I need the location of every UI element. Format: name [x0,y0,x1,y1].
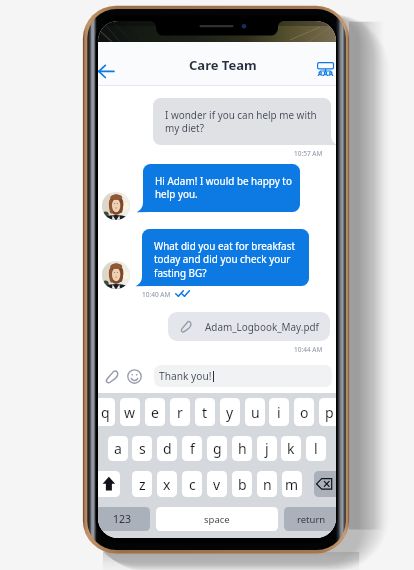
staticText: y [226,403,234,422]
button[interactable]: Back [98,58,120,84]
staticText: 123 [113,512,132,526]
button[interactable]: w [120,398,140,426]
button[interactable]: q [98,398,115,426]
button[interactable]: a [108,436,128,461]
button[interactable]: p [319,398,336,426]
staticText: space [204,513,230,526]
staticText: w [124,403,136,422]
button[interactable]: t [195,398,215,426]
button[interactable]: I wonder if you can help me with my diet… [153,98,331,145]
button[interactable]: Shift [98,471,120,497]
staticText: l [314,439,318,458]
button[interactable]: i [269,398,289,426]
staticText: f [190,439,195,458]
staticText: m [285,475,299,494]
staticText: d [163,439,172,458]
staticText: e [151,403,159,422]
staticText: b [238,475,247,494]
staticText: r [177,403,183,422]
staticText: c [189,475,196,494]
button[interactable]: Emoji [127,369,142,384]
staticText: Adam_Logbook_May.pdf [205,320,319,333]
button[interactable]: x [157,471,177,497]
staticText: h [238,439,247,458]
button[interactable]: y [220,398,240,426]
button[interactable]: o [294,398,314,426]
staticText: i [277,403,281,422]
staticText: s [139,439,146,458]
button[interactable]: Attach file [104,368,121,385]
button[interactable]: m [282,471,302,497]
button[interactable]: d [157,436,177,461]
button[interactable]: h [232,436,252,461]
button[interactable]: 123 [98,507,150,531]
staticText: What did you eat for breakfast today and… [154,239,295,279]
button[interactable]: space [156,507,278,531]
button[interactable]: Care team members [317,62,335,76]
staticText: Care Team [189,56,257,74]
staticText: Hi Adam! I would be happy to help you. [155,174,292,200]
staticText: I wonder if you can help me with my diet… [165,108,317,134]
staticText: 10:40 AM [142,290,171,299]
staticText: p [325,403,334,422]
button[interactable]: n [257,471,277,497]
button[interactable]: j [257,436,277,461]
staticText: 10:57 AM [294,149,323,158]
button[interactable]: r [170,398,190,426]
button[interactable]: Thank you! [154,365,332,387]
staticText: Thank you! [159,369,212,383]
staticText: o [300,403,309,422]
button[interactable]: z [132,471,152,497]
staticText: g [213,439,222,458]
button[interactable]: s [132,436,152,461]
button[interactable]: e [145,398,165,426]
button[interactable]: k [281,436,301,461]
staticText: x [163,475,171,494]
button[interactable]: return [284,507,336,531]
button[interactable]: c [182,471,202,497]
staticText: return [297,513,326,526]
button[interactable]: Adam_Logbook_May.pdf [168,312,330,341]
button[interactable]: u [245,398,265,426]
staticText: q [101,403,110,422]
staticText: 10:44 AM [294,345,323,354]
staticText: t [202,403,208,422]
staticText: v [213,475,221,494]
button[interactable]: v [207,471,227,497]
staticText: u [251,403,260,422]
button[interactable]: b [232,471,252,497]
staticText: a [114,439,122,458]
staticText: k [287,439,295,458]
button[interactable]: What did you eat for breakfast today and… [142,229,309,286]
staticText: n [263,475,272,494]
button[interactable]: Hi Adam! I would be happy to help you. [143,164,300,212]
button[interactable]: g [207,436,227,461]
button[interactable]: f [182,436,202,461]
button[interactable]: Backspace [314,471,336,497]
staticText: j [265,439,269,458]
staticText: z [139,475,146,494]
button[interactable]: l [306,436,326,461]
